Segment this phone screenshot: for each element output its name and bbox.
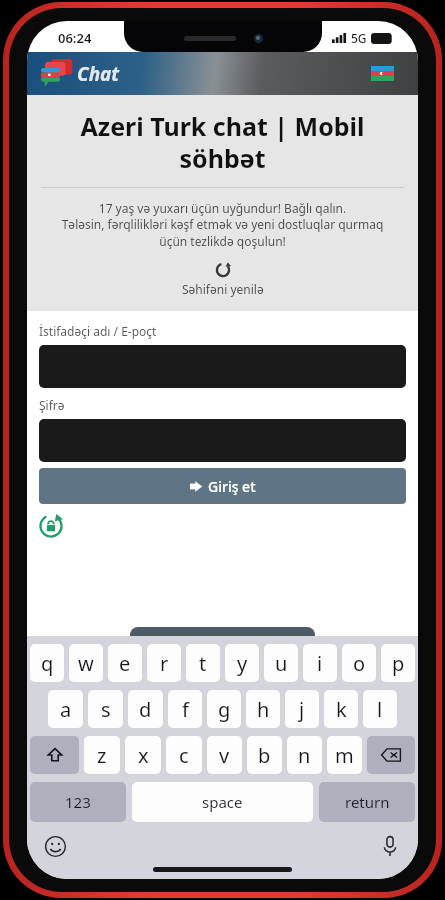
button[interactable]: s	[88, 690, 123, 728]
button[interactable]: t	[186, 644, 220, 682]
staticText: Chat	[77, 61, 120, 87]
button[interactable]: k	[324, 690, 358, 728]
button[interactable]: space	[132, 782, 313, 822]
button[interactable]: f	[168, 690, 202, 728]
button[interactable]: h	[246, 690, 280, 728]
staticText: y	[237, 650, 248, 677]
button[interactable]: n	[287, 736, 322, 774]
staticText: Şifrə	[39, 397, 65, 413]
button[interactable]: r	[147, 644, 181, 682]
staticText: n	[298, 742, 311, 769]
button[interactable]: v	[207, 736, 242, 774]
button[interactable]: Voice input	[377, 833, 403, 859]
button[interactable]: Language: Azerbaijani	[369, 64, 396, 83]
button[interactable]: j	[285, 690, 319, 728]
staticText: a	[60, 696, 72, 723]
button[interactable]: Emoji	[42, 833, 68, 859]
staticText: 123	[65, 792, 91, 812]
staticText: x	[138, 742, 149, 769]
staticText: z	[97, 742, 107, 769]
button[interactable]: Username or email field	[39, 345, 406, 388]
button[interactable]: Giriş et	[39, 468, 406, 504]
staticText: space	[202, 792, 243, 812]
button[interactable]: i	[303, 644, 337, 682]
button[interactable]: d	[128, 690, 163, 728]
staticText: h	[257, 696, 270, 723]
staticText: j	[299, 696, 305, 723]
staticText: q	[41, 650, 54, 677]
staticText: r	[160, 650, 169, 677]
staticText: m	[335, 742, 354, 769]
staticText: d	[139, 696, 152, 723]
staticText: v	[219, 742, 230, 769]
staticText: i	[317, 650, 323, 677]
button[interactable]: u	[264, 644, 298, 682]
staticText: g	[218, 696, 231, 723]
button[interactable]: return	[319, 782, 415, 822]
staticText: u	[275, 650, 288, 677]
staticText: İstifadəçi adı / E-poçt	[39, 323, 157, 339]
staticText: Azeri Turk chat | Mobil söhbət	[41, 109, 404, 175]
staticText: return	[345, 792, 390, 812]
staticText: e	[119, 650, 131, 677]
button[interactable]: m	[327, 736, 362, 774]
button[interactable]: x	[125, 736, 161, 774]
button[interactable]: Shift	[30, 736, 79, 774]
staticText: Səhifəni yenilə	[182, 281, 264, 297]
button[interactable]: c	[166, 736, 202, 774]
staticText: b	[258, 742, 271, 769]
staticText: c	[179, 742, 189, 769]
staticText: k	[336, 696, 347, 723]
button[interactable]: a	[48, 690, 83, 728]
button[interactable]: e	[108, 644, 142, 682]
staticText: o	[353, 650, 366, 677]
staticText: Giriş et	[208, 477, 256, 496]
staticText: w	[78, 650, 94, 677]
staticText: 5G	[351, 30, 367, 46]
button[interactable]: Səhifəni yenilə	[41, 262, 404, 297]
button[interactable]: p	[381, 644, 415, 682]
staticText: s	[101, 696, 111, 723]
button[interactable]: Password field	[39, 419, 406, 462]
staticText: 17 yaş və yuxarı üçün uyğundur! Bağlı qa…	[41, 200, 404, 250]
staticText: f	[182, 696, 189, 723]
button[interactable]: b	[247, 736, 282, 774]
button[interactable]: Security check	[39, 514, 63, 538]
staticText: t	[199, 650, 207, 677]
button[interactable]: w	[69, 644, 103, 682]
button[interactable]: g	[207, 690, 241, 728]
button[interactable]: 123	[30, 782, 126, 822]
button[interactable]: y	[225, 644, 259, 682]
staticText: 06:24	[58, 29, 92, 47]
staticText: l	[377, 696, 383, 723]
button[interactable]: q	[30, 644, 64, 682]
button[interactable]: l	[363, 690, 397, 728]
button[interactable]: z	[84, 736, 120, 774]
staticText: p	[392, 650, 405, 677]
button[interactable]: o	[342, 644, 376, 682]
button[interactable]: Backspace	[367, 736, 415, 774]
